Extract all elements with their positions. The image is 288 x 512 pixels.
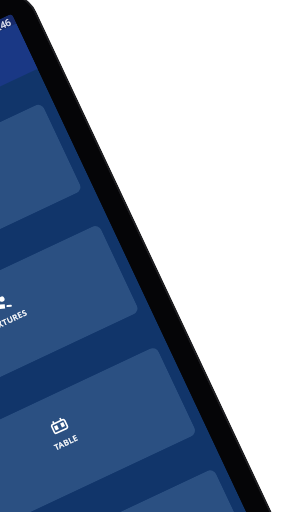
staticText: TABLE: [52, 432, 81, 453]
button[interactable]: TEAMS: [0, 468, 255, 512]
staticText: 16:46: [0, 15, 13, 36]
button[interactable]: TABLE: [0, 346, 197, 512]
button[interactable]: FIXTURES: [0, 224, 140, 416]
button[interactable]: NEWS: [0, 102, 83, 295]
staticText: FIXTURES: [0, 307, 30, 334]
